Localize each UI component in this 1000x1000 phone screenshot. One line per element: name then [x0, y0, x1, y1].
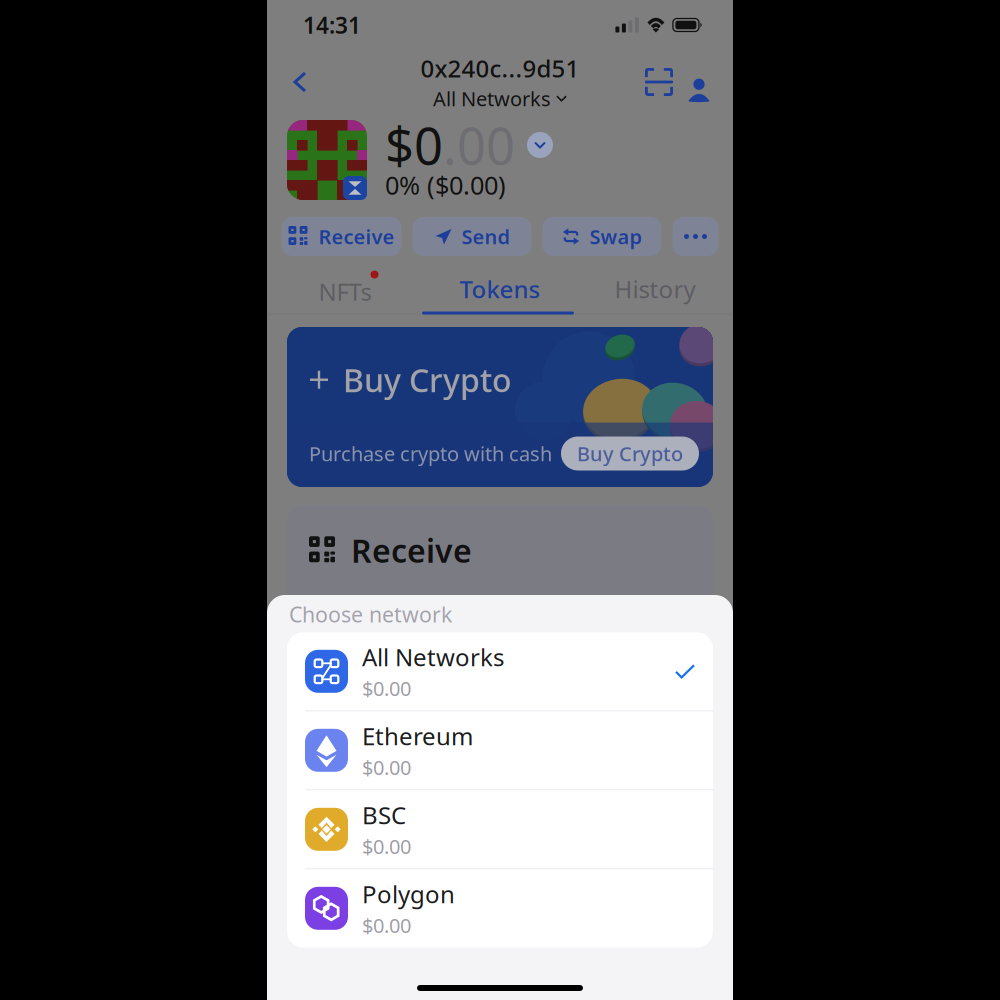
staticText: Buy Crypto	[577, 440, 683, 467]
button[interactable]: All Networks	[433, 85, 567, 112]
button[interactable]: Expand balance	[527, 132, 553, 158]
staticText: Purchase crypto with cash	[309, 440, 552, 467]
button[interactable]: Account	[679, 60, 719, 104]
staticText: Polygon	[362, 878, 455, 910]
staticText: $0.00	[362, 833, 411, 860]
button[interactable]: More	[672, 217, 718, 256]
staticText: Tokens	[459, 273, 540, 305]
button[interactable]: Receive	[281, 217, 401, 256]
button[interactable]: Swap	[542, 217, 661, 256]
staticText: Send	[461, 223, 510, 250]
button[interactable]: NFTs	[267, 267, 422, 311]
staticText: Ethereum	[362, 720, 473, 752]
button[interactable]: History	[577, 267, 732, 311]
staticText: 14:31	[303, 10, 361, 40]
staticText: All Networks	[362, 641, 504, 673]
staticText: Buy Crypto	[343, 358, 512, 401]
button[interactable]: Tokens	[422, 267, 577, 311]
button[interactable]: Scan	[639, 60, 679, 104]
button[interactable]: Polygon	[287, 869, 713, 947]
staticText: 0% ($0.00)	[385, 168, 506, 202]
staticText: BSC	[362, 799, 406, 831]
staticText: NFTs	[318, 276, 371, 307]
button[interactable]: BSC	[287, 790, 713, 868]
staticText: .00	[443, 111, 515, 179]
button[interactable]: Back	[281, 60, 321, 104]
staticText: History	[614, 273, 695, 305]
staticText: $0	[385, 111, 443, 179]
staticText: Choose network	[289, 600, 452, 628]
staticText: Swap	[589, 223, 642, 250]
staticText: $0.00	[362, 675, 411, 702]
button[interactable]: All Networks	[287, 632, 713, 710]
staticText: 0x240c...9d51	[420, 52, 579, 84]
button[interactable]: Send	[412, 217, 531, 256]
staticText: $0.00	[362, 912, 411, 939]
staticText: Receive	[318, 223, 394, 250]
button[interactable]: Buy Crypto	[287, 327, 713, 487]
button[interactable]: Ethereum	[287, 711, 713, 789]
staticText: $0.00	[362, 754, 411, 781]
staticText: All Networks	[433, 85, 551, 112]
button[interactable]: Receive	[287, 505, 713, 625]
staticText: Receive	[351, 529, 472, 571]
